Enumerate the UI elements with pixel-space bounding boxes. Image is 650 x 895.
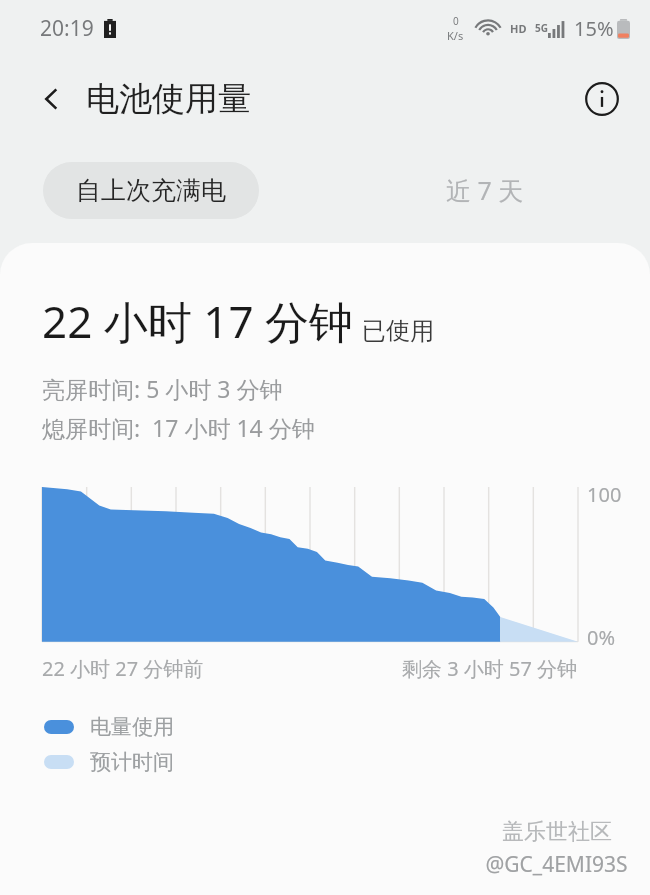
staticText: 熄屏时间: 17 小时 14 分钟 [42, 412, 315, 443]
staticText: 100 [587, 481, 622, 508]
staticText: 电池使用量 [86, 78, 251, 120]
staticText: 0 [453, 14, 459, 28]
staticText: 自上次充满电 [76, 175, 226, 206]
staticText: 盖乐世社区 [502, 818, 612, 846]
staticText: K/s [447, 28, 464, 43]
staticText: 已使用 [362, 316, 434, 346]
button[interactable]: Information [574, 71, 630, 127]
staticText: 亮屏时间: 5 小时 3 分钟 [42, 373, 283, 404]
staticText: 22 小时 17 分钟 [42, 291, 353, 351]
staticText: 5G [535, 21, 548, 35]
button[interactable]: 自上次充满电 [43, 162, 259, 219]
button[interactable]: Back [24, 71, 80, 127]
button[interactable]: 近 7 天 [428, 160, 542, 220]
staticText: 剩余 3 小时 57 分钟 [402, 655, 578, 682]
staticText: 20:19 [40, 14, 94, 43]
staticText: 15% [574, 15, 614, 42]
staticText: @GC_4EMI93S [485, 850, 628, 879]
staticText: 电量使用 [90, 714, 174, 740]
staticText: 22 小时 27 分钟前 [42, 655, 204, 682]
staticText: HD [510, 21, 527, 36]
staticText: 0% [587, 624, 616, 651]
staticText: 近 7 天 [446, 173, 524, 207]
staticText: 预计时间 [90, 749, 174, 775]
